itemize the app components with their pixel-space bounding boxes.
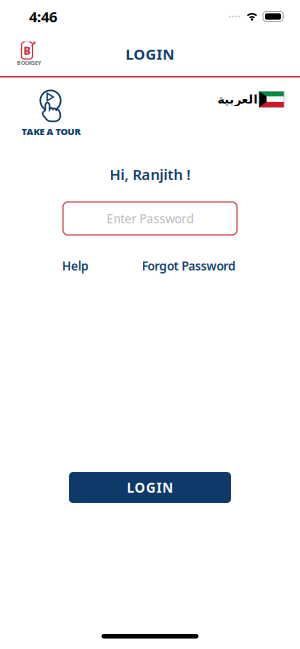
staticText: 4:46 (29, 7, 57, 26)
staticText: Hi, Ranjith ! (109, 164, 190, 184)
button[interactable]: Forgot Password (142, 258, 236, 274)
staticText: LOGIN (127, 479, 173, 496)
staticText: Enter Password (106, 210, 193, 226)
button[interactable]: LOGIN (69, 472, 231, 503)
staticText: B (23, 43, 30, 58)
staticText: Help (62, 258, 89, 274)
staticText: العربية (217, 92, 257, 106)
button[interactable]: Help (62, 258, 89, 274)
staticText: TAKE A TOUR (21, 125, 80, 138)
button[interactable]: Switch to Arabic (217, 77, 300, 107)
button[interactable]: Booksey (18, 38, 40, 64)
staticText: Forgot Password (142, 258, 236, 274)
staticText: LOGIN (125, 44, 174, 64)
button[interactable]: Take a tour (0, 77, 80, 138)
button[interactable]: Enter Password (63, 202, 237, 235)
staticText: BOOKSEY (17, 59, 41, 67)
